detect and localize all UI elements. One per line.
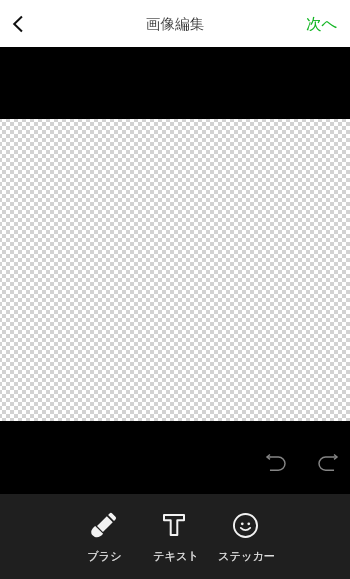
button[interactable]: テキスト <box>140 494 211 579</box>
button[interactable]: 次へ <box>290 3 350 45</box>
staticText: 次へ <box>306 14 338 34</box>
button[interactable]: Redo <box>310 445 346 481</box>
staticText: ステッカー <box>218 549 275 563</box>
button[interactable]: Back <box>0 2 44 46</box>
staticText: テキスト <box>153 549 199 563</box>
staticText: 画像編集 <box>146 15 204 33</box>
button[interactable]: ステッカー <box>211 494 282 579</box>
button[interactable]: Undo <box>258 445 294 481</box>
button[interactable]: ブラシ <box>69 494 140 579</box>
staticText: ブラシ <box>87 549 122 563</box>
